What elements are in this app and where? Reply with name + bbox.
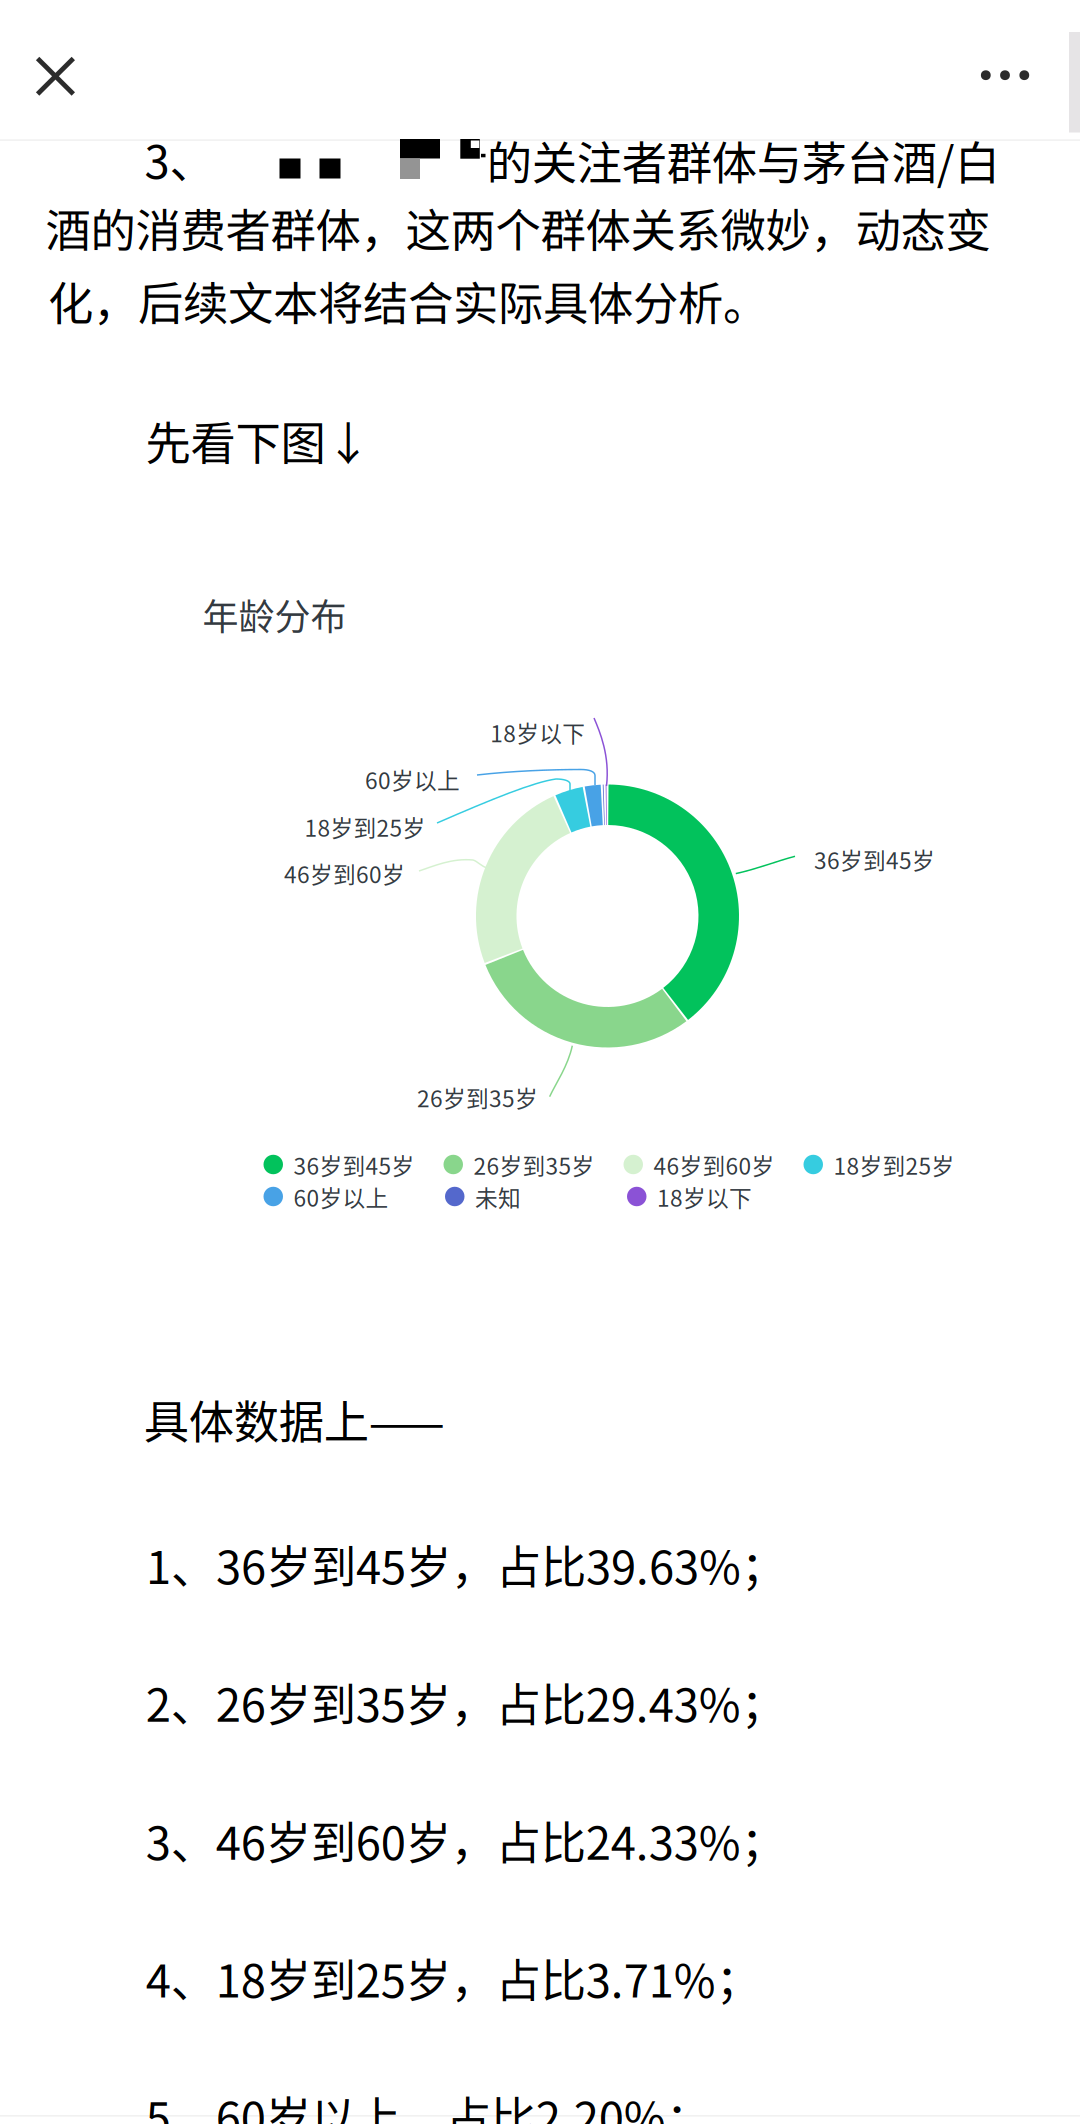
staticText: 未知: [475, 1180, 521, 1213]
staticText: 年龄分布: [202, 589, 346, 641]
staticText: 3、: [144, 126, 214, 192]
staticText: 60岁以上: [365, 763, 460, 796]
staticText: 18岁以下: [657, 1180, 752, 1213]
staticText: 酒的消费者群体，这两个群体关系微妙，动态变: [45, 195, 990, 261]
staticText: 36岁到45岁: [814, 843, 935, 876]
staticText: 先看下图↓: [145, 408, 370, 473]
staticText: 26岁到35岁: [473, 1148, 594, 1181]
staticText: 具体数据上——: [144, 1386, 445, 1452]
button[interactable]: Close: [0, 0, 110, 133]
staticText: 5、60岁以上，占比2.20%；: [146, 2083, 711, 2124]
staticText: 2、26岁到35岁，占比29.43%；: [146, 1669, 786, 1735]
staticText: 46岁到60岁: [653, 1148, 774, 1181]
staticText: 1、36岁到45岁，占比39.63%；: [146, 1531, 786, 1597]
staticText: 18岁到25岁: [304, 810, 425, 843]
staticText: 化，后续文本将结合实际具体分析。: [48, 268, 768, 334]
staticText: 36岁到45岁: [293, 1148, 414, 1181]
button[interactable]: More: [950, 0, 1060, 133]
staticText: 26岁到35岁: [417, 1081, 538, 1114]
staticText: 4、18岁到25岁，占比3.71%；: [146, 1945, 761, 2010]
staticText: 的关注者群体与茅台酒/白: [487, 127, 1000, 193]
staticText: 3、46岁到60岁，占比24.33%；: [146, 1807, 786, 1873]
staticText: 46岁到60岁: [284, 857, 405, 890]
staticText: 18岁以下: [490, 716, 585, 749]
staticText: 60岁以上: [293, 1180, 388, 1213]
staticText: 18岁到25岁: [833, 1148, 954, 1181]
